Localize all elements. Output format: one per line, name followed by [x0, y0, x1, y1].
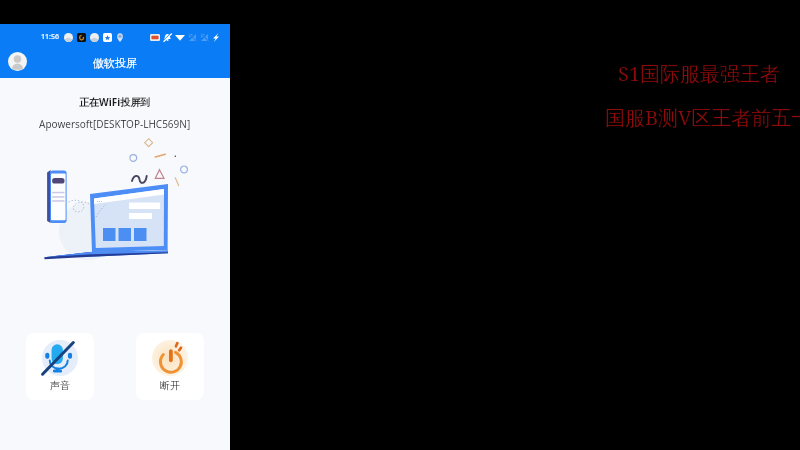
staticText: 正在WiFi投屏到 [79, 95, 151, 109]
staticText: 国服B测V区王者前五十 [605, 104, 800, 131]
staticText: 11:56 [41, 32, 59, 42]
staticText: 声音 [50, 379, 70, 392]
staticText: 断开 [160, 379, 180, 392]
staticText: 傲软投屏 [93, 56, 137, 70]
button[interactable]: 声音 [26, 333, 94, 400]
button[interactable]: Account [8, 52, 27, 71]
staticText: S1国际服最强王者 [618, 60, 781, 87]
staticText: Apowersoft[DESKTOP-LHC569N] [39, 117, 191, 131]
button[interactable]: 断开 [136, 333, 204, 400]
